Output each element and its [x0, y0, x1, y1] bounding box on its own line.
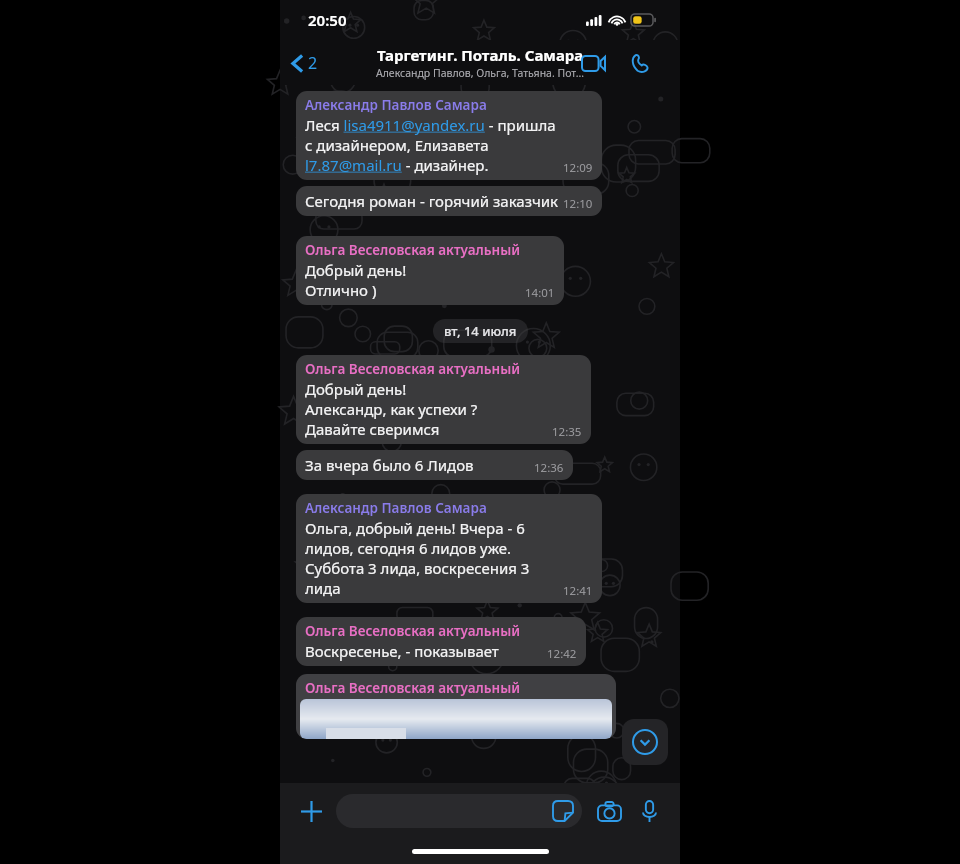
staticText: вт, 14 июля: [444, 322, 517, 340]
staticText: лида: [305, 578, 341, 598]
staticText: 20:50: [308, 10, 347, 30]
staticText: 12:41: [563, 583, 593, 599]
staticText: 12:09: [563, 160, 593, 176]
staticText: l7.87@mail.ru - дизайнер.: [305, 155, 489, 175]
staticText: Ольга Веселовская актуальный: [305, 241, 521, 259]
staticText: Отлично ): [305, 280, 377, 300]
staticText: Ольга Веселовская актуальный: [305, 679, 521, 697]
staticText: Александр, как успехи ?: [305, 399, 478, 419]
other: Stickers: [553, 801, 573, 821]
staticText: Таргетинг. Поталь. Самара: [377, 45, 584, 65]
other: Back: [292, 54, 303, 73]
staticText: Добрый день!: [305, 260, 407, 280]
staticText: 14:01: [525, 285, 555, 301]
staticText: Александр Павлов Самара: [305, 499, 487, 517]
button[interactable]: Scroll to bottom: [622, 719, 668, 765]
button[interactable]: вт, 14 июля: [433, 319, 528, 343]
staticText: Леся lisa4911@yandex.ru - пришла: [305, 115, 556, 135]
staticText: Добрый день!: [305, 379, 407, 399]
staticText: лидов, сегодня 6 лидов уже.: [305, 538, 512, 558]
staticText: Сегодня роман - горячий заказчик: [305, 191, 559, 211]
staticText: Ольга, добрый день! Вчера - 6: [305, 518, 525, 538]
staticText: Ольга Веселовская актуальный: [305, 360, 521, 378]
button[interactable]: Ольга Веселовская актуальный: [296, 355, 591, 444]
button[interactable]: Александр Павлов Самара: [296, 91, 602, 180]
staticText: За вчера было 6 Лидов: [305, 455, 474, 475]
staticText: Ольга Веселовская актуальный: [305, 622, 521, 640]
staticText: Александр Павлов, Ольга, Татьяна. Пот…: [376, 66, 585, 80]
staticText: Александр Павлов Самара: [305, 96, 487, 114]
button[interactable]: Camera: [592, 794, 626, 828]
button[interactable]: Voice message: [632, 794, 666, 828]
button[interactable]: Александр Павлов Самара: [296, 494, 602, 603]
staticText: с дизайнером, Елизавета: [305, 135, 489, 155]
button[interactable]: Ольга Веселовская актуальный: [296, 617, 586, 666]
staticText: Воскресенье, - показывает: [305, 641, 499, 661]
button[interactable]: За вчера было 6 Лидов: [296, 450, 573, 480]
staticText: 12:42: [547, 646, 577, 662]
button[interactable]: Ольга Веселовская актуальный: [296, 674, 616, 739]
button[interactable]: Stickers: [336, 794, 582, 828]
button[interactable]: Ольга Веселовская актуальный: [296, 236, 564, 305]
staticText: 2: [308, 52, 318, 74]
staticText: 12:36: [534, 460, 564, 476]
button[interactable]: Attach: [294, 794, 328, 828]
button[interactable]: Call: [622, 46, 656, 80]
staticText: Суббота 3 лида, воскресения 3: [305, 558, 530, 578]
button[interactable]: Video call: [576, 46, 610, 80]
button[interactable]: Back: [288, 48, 322, 78]
staticText: Давайте сверимся: [305, 419, 440, 439]
button[interactable]: Сегодня роман - горячий заказчик: [296, 186, 602, 216]
staticText: 12:10: [563, 196, 593, 212]
staticText: 12:35: [552, 424, 582, 440]
